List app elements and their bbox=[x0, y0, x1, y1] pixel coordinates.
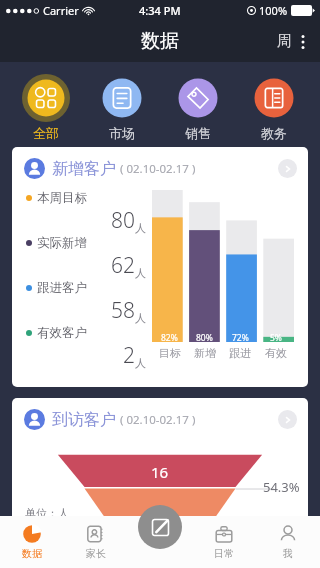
staticText: 目标 bbox=[159, 346, 181, 360]
staticText: 我 bbox=[283, 547, 293, 560]
button[interactable]: 教务 bbox=[244, 74, 304, 141]
staticText: 人 bbox=[135, 311, 146, 325]
staticText: 教务 bbox=[261, 125, 287, 141]
button[interactable]: 新增客户 bbox=[12, 147, 308, 179]
staticText: 5% bbox=[270, 332, 282, 344]
button[interactable]: 日常 bbox=[192, 516, 256, 568]
staticText: 单位：人 bbox=[25, 506, 69, 520]
staticText: 数据 bbox=[22, 547, 42, 560]
button[interactable]: 到访客户 bbox=[12, 398, 308, 548]
staticText: Carrier bbox=[43, 3, 79, 18]
button[interactable]: 新增客户 bbox=[12, 147, 308, 387]
staticText: 有效 bbox=[265, 346, 287, 360]
staticText: 到访客户 bbox=[52, 410, 116, 430]
staticText: 80% bbox=[196, 332, 213, 344]
staticText: 人 bbox=[135, 356, 146, 370]
button[interactable]: 家长 bbox=[64, 516, 128, 568]
staticText: 本周目标 bbox=[37, 190, 87, 206]
button[interactable]: 周 bbox=[275, 28, 312, 55]
staticText: 新增 bbox=[194, 346, 216, 360]
staticText: 54.3% bbox=[263, 478, 300, 496]
staticText: 82% bbox=[161, 332, 178, 344]
staticText: 16 bbox=[151, 462, 169, 482]
staticText: 数据 bbox=[141, 29, 179, 53]
staticText: 人 bbox=[135, 221, 146, 235]
button[interactable]: View details bbox=[278, 159, 297, 178]
staticText: ( 02.10-02.17 ) bbox=[120, 412, 196, 428]
staticText: 80 bbox=[111, 206, 135, 235]
staticText: 新增客户 bbox=[52, 159, 116, 179]
staticText: 72% bbox=[232, 332, 249, 344]
staticText: 家长 bbox=[86, 547, 106, 560]
staticText: ( 02.10-02.17 ) bbox=[120, 161, 196, 177]
button[interactable]: Compose new entry bbox=[138, 505, 182, 549]
staticText: 人 bbox=[135, 266, 146, 280]
staticText: 全部 bbox=[33, 125, 59, 141]
staticText: 4:34 PM bbox=[139, 3, 181, 18]
staticText: 62 bbox=[111, 251, 135, 280]
other: More options bbox=[296, 33, 310, 51]
button[interactable]: View details bbox=[278, 410, 297, 429]
staticText: 市场 bbox=[109, 125, 135, 141]
staticText: 日常 bbox=[214, 547, 234, 560]
staticText: 跟进 bbox=[229, 346, 251, 360]
button[interactable]: 销售 bbox=[168, 74, 228, 141]
staticText: 跟进客户 bbox=[37, 280, 87, 296]
button[interactable]: 我 bbox=[256, 516, 320, 568]
staticText: 58 bbox=[111, 296, 135, 325]
staticText: 2 bbox=[123, 341, 135, 370]
staticText: 实际新增 bbox=[37, 235, 87, 251]
button[interactable]: 市场 bbox=[92, 74, 152, 141]
staticText: 销售 bbox=[185, 125, 211, 141]
staticText: 有效客户 bbox=[37, 325, 87, 341]
staticText: 周 bbox=[277, 32, 292, 51]
button[interactable]: 数据 bbox=[0, 516, 64, 568]
button[interactable]: 到访客户 bbox=[12, 398, 308, 430]
button[interactable]: 全部 bbox=[16, 74, 76, 141]
staticText: 100% bbox=[259, 3, 288, 18]
